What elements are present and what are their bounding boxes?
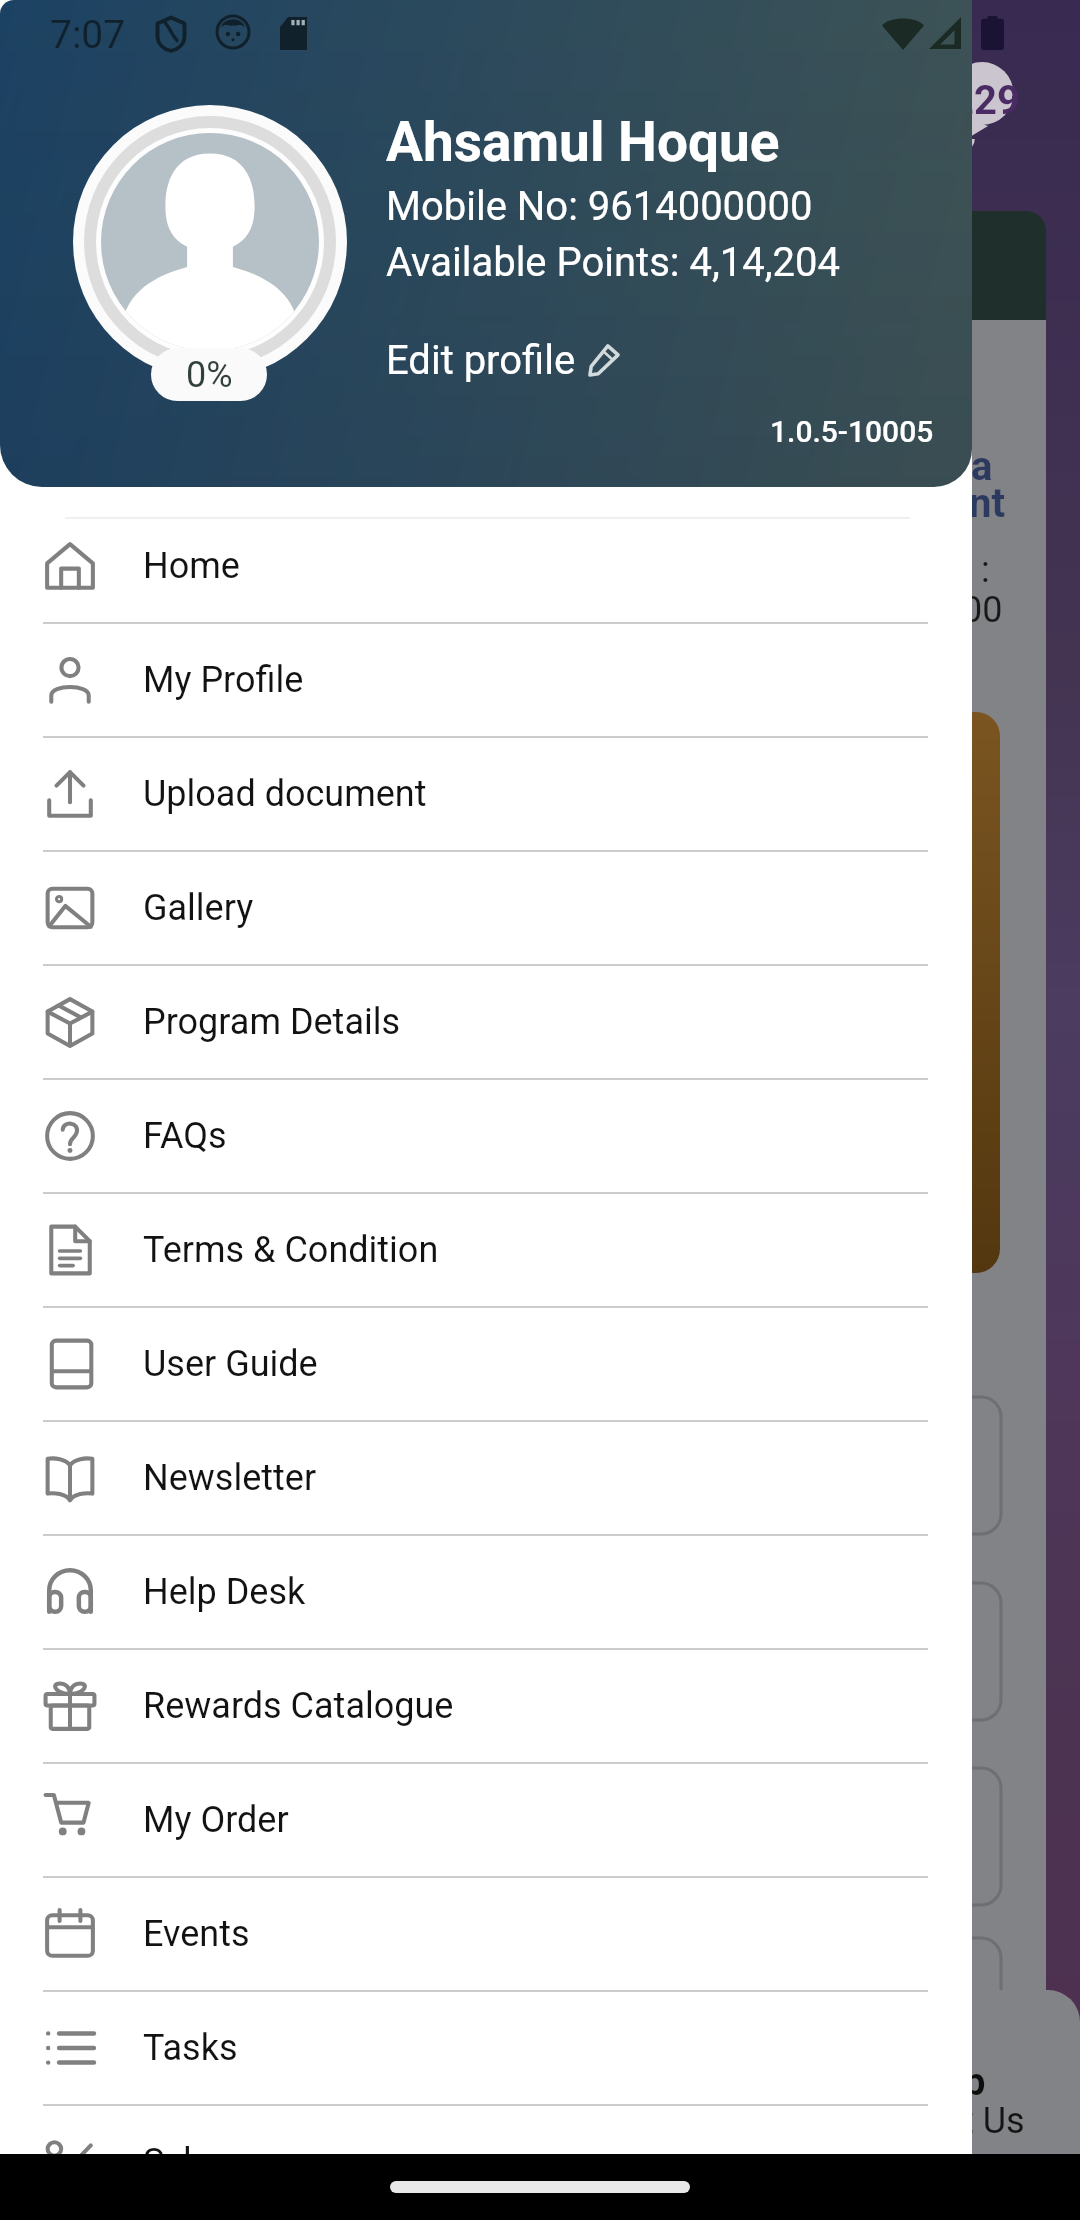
staticText: nt — [969, 480, 1005, 527]
staticText: p — [964, 2060, 986, 2105]
other: Edit profile — [588, 344, 620, 376]
staticText: Ahsamul Hoque — [386, 110, 780, 174]
staticText: Newsletter — [143, 1457, 317, 1499]
staticText: a — [971, 443, 993, 490]
staticText: My Order — [143, 1799, 289, 1841]
staticText: Program Details — [143, 1001, 401, 1043]
staticText: Mobile No: 9614000000 — [386, 183, 813, 230]
button[interactable]: User Guide — [0, 1308, 972, 1420]
staticText: My Profile — [143, 659, 304, 701]
staticText: 7:07 — [50, 12, 126, 58]
button[interactable]: Program Details — [0, 966, 972, 1078]
staticText: 00 — [962, 589, 1003, 631]
button[interactable]: Gallery — [0, 852, 972, 964]
staticText: Help Desk — [143, 1571, 306, 1613]
staticText: Tasks — [143, 2027, 238, 2069]
staticText: Available Points: 4,14,204 — [386, 239, 841, 286]
button[interactable]: Rewards Catalogue — [0, 1650, 972, 1762]
staticText: Events — [143, 1913, 250, 1955]
button[interactable]: My Order — [0, 1764, 972, 1876]
button[interactable]: Tasks — [0, 1992, 972, 2104]
staticText: Edit profile — [386, 337, 576, 384]
staticText: User Guide — [143, 1343, 318, 1385]
staticText: FAQs — [143, 1115, 227, 1157]
staticText: Home — [143, 545, 240, 587]
button[interactable]: My Profile — [0, 624, 972, 736]
staticText: Rewards Catalogue — [143, 1685, 454, 1727]
button[interactable]: FAQs — [0, 1080, 972, 1192]
button[interactable]: Help Desk — [0, 1536, 972, 1648]
button[interactable]: Edit profile — [386, 337, 624, 384]
staticText: Terms & Condition — [143, 1229, 439, 1271]
staticText: Gallery — [143, 887, 254, 929]
button[interactable]: Home — [0, 510, 972, 622]
button[interactable]: Upload document — [0, 738, 972, 850]
button[interactable]: Terms & Condition — [0, 1194, 972, 1306]
staticText: Scheme — [143, 2141, 273, 2183]
staticText: 1.0.5-10005 — [770, 414, 934, 449]
staticText: 0% — [186, 354, 233, 396]
staticText: Upload document — [143, 773, 427, 815]
staticText: t Us — [962, 2100, 1025, 2142]
button[interactable]: Newsletter — [0, 1422, 972, 1534]
button[interactable]: Events — [0, 1878, 972, 1990]
button[interactable]: Scheme — [0, 2106, 972, 2218]
staticText: 229 — [951, 77, 1020, 124]
staticText: : — [981, 549, 990, 591]
